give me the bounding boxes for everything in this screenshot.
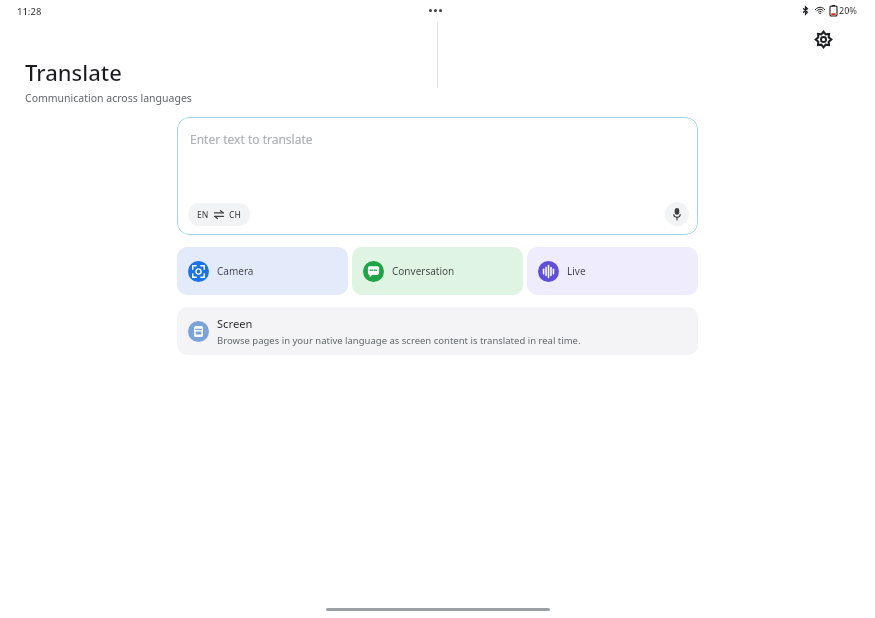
staticText: Communication across languages	[25, 91, 192, 105]
staticText: Live	[567, 264, 586, 278]
staticText: EN	[197, 209, 209, 221]
button[interactable]: Settings	[810, 26, 836, 52]
staticText: 20%	[839, 4, 857, 16]
button[interactable]: Voice input	[665, 202, 689, 226]
button[interactable]: EN	[188, 203, 250, 226]
staticText: Conversation	[392, 264, 455, 278]
staticText: Screen	[217, 316, 253, 331]
button[interactable]: Enter text to translate	[177, 117, 698, 235]
staticText: Enter text to translate	[190, 131, 313, 147]
staticText: CH	[229, 209, 241, 221]
staticText: 11:28	[17, 5, 42, 18]
staticText: Camera	[217, 264, 254, 278]
staticText: Browse pages in your native language as …	[217, 334, 581, 347]
button[interactable]: Conversation	[352, 247, 523, 295]
staticText: Translate	[25, 57, 122, 87]
button[interactable]: Live	[527, 247, 698, 295]
button[interactable]: Camera	[177, 247, 348, 295]
button[interactable]: Screen	[177, 307, 698, 355]
